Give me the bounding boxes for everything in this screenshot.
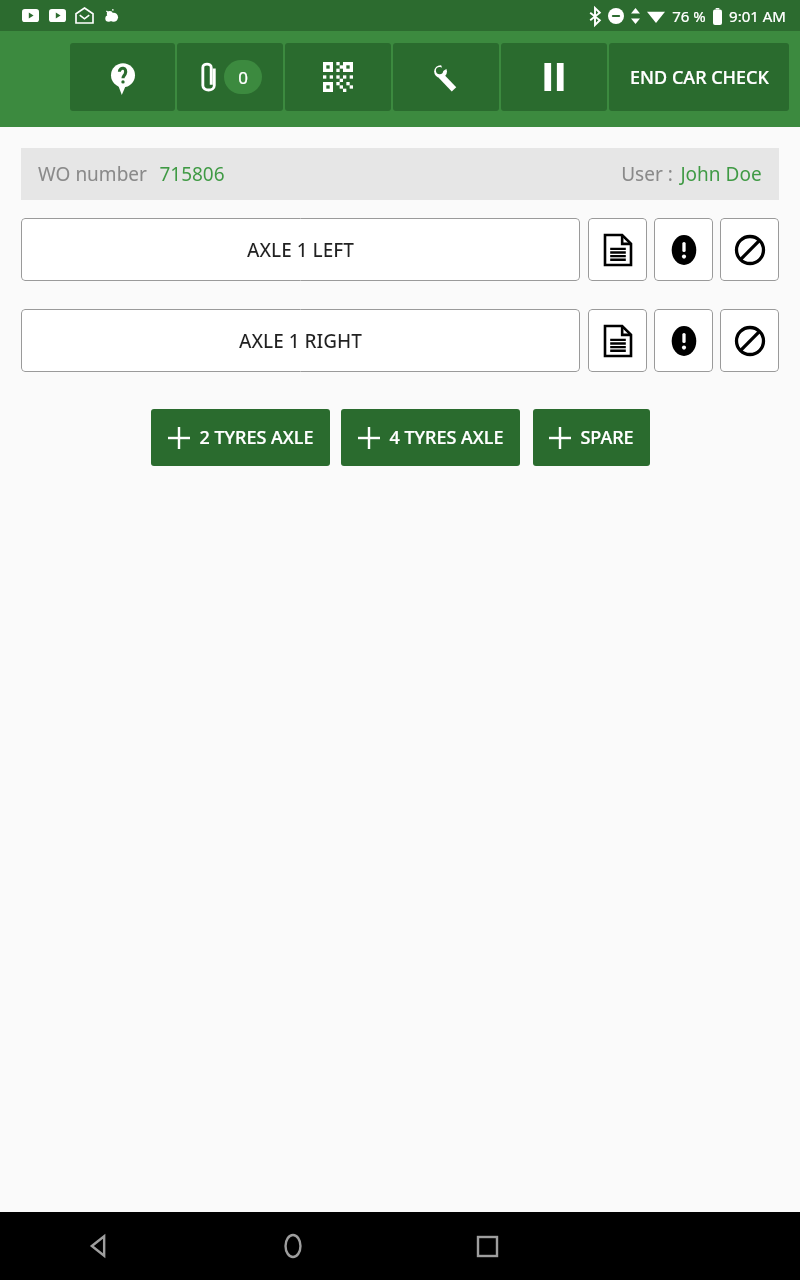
staticText: SPARE	[580, 425, 634, 450]
button[interactable]: Attachments	[177, 43, 283, 111]
button[interactable]: Not applicable	[720, 309, 779, 372]
button[interactable]: Pause	[501, 43, 607, 111]
staticText: 4 TYRES AXLE	[389, 425, 504, 450]
staticText: 715806	[159, 161, 225, 187]
button[interactable]: Not applicable	[720, 218, 779, 281]
button[interactable]: SPARE	[533, 409, 650, 466]
staticText: 76 %	[672, 6, 706, 26]
button[interactable]: Notes	[588, 218, 647, 281]
button[interactable]: Recent apps	[390, 1212, 585, 1280]
button[interactable]: Tools	[393, 43, 499, 111]
button[interactable]: 2 TYRES AXLE	[151, 409, 330, 466]
staticText: AXLE 1 RIGHT	[239, 328, 362, 354]
staticText: AXLE 1 LEFT	[247, 237, 354, 263]
staticText: 0	[238, 66, 248, 89]
button[interactable]: Back	[0, 1212, 195, 1280]
button[interactable]: Report defect	[654, 309, 713, 372]
button[interactable]: END CAR CHECK	[609, 43, 789, 111]
staticText: WO number	[38, 161, 147, 187]
button[interactable]: Help	[70, 43, 175, 111]
button[interactable]: AXLE 1 LEFT	[21, 218, 580, 281]
staticText: END CAR CHECK	[630, 65, 769, 90]
button[interactable]: 4 TYRES AXLE	[341, 409, 520, 466]
button[interactable]: Report defect	[654, 218, 713, 281]
staticText: 2 TYRES AXLE	[199, 425, 314, 450]
staticText: 9:01 AM	[729, 6, 786, 26]
button[interactable]: Scan code	[285, 43, 391, 111]
button[interactable]: AXLE 1 RIGHT	[21, 309, 580, 372]
staticText: John Doe	[680, 161, 762, 187]
button[interactable]: Notes	[588, 309, 647, 372]
button[interactable]: Home	[195, 1212, 390, 1280]
staticText: User :	[621, 161, 673, 187]
